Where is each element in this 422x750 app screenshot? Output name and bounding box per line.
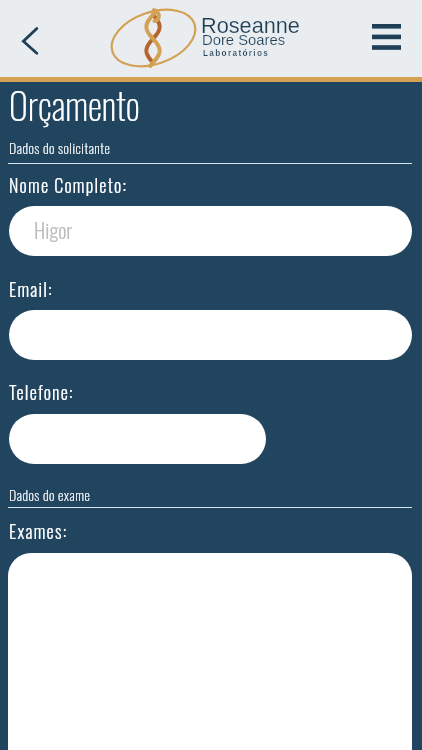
staticText: Dore Soares	[202, 32, 286, 49]
staticText: Roseanne	[201, 13, 300, 37]
button[interactable]	[9, 310, 412, 360]
staticText: Dados do solicitante	[9, 137, 111, 158]
staticText: Exames:	[9, 518, 68, 545]
staticText: Laboratórios	[203, 49, 270, 58]
button[interactable]: Higor	[9, 206, 412, 256]
staticText: Orçamento	[9, 77, 140, 131]
button[interactable]: Menu	[363, 10, 421, 68]
staticText: Dados do exame	[9, 484, 91, 505]
button[interactable]	[9, 414, 266, 464]
staticText: Higor	[34, 215, 73, 245]
staticText: Telefone:	[9, 379, 74, 406]
button[interactable]: Back	[2, 10, 60, 68]
button[interactable]	[8, 553, 412, 750]
staticText: Nome Completo:	[9, 172, 128, 199]
staticText: Email:	[9, 276, 53, 303]
